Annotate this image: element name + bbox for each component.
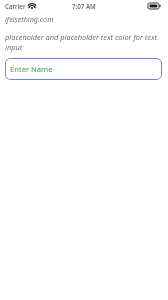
- button[interactable]: ifelsething.com: [5, 14, 163, 24]
- staticText: ifelsething.com: [5, 14, 54, 24]
- staticText: Carrier: [5, 2, 26, 10]
- staticText: 7:07 AM: [72, 2, 96, 10]
- button[interactable]: Enter Name text field: [5, 58, 162, 80]
- staticText: placeholder and placeholder text color f…: [5, 32, 160, 52]
- staticText: Enter Name: [10, 64, 53, 74]
